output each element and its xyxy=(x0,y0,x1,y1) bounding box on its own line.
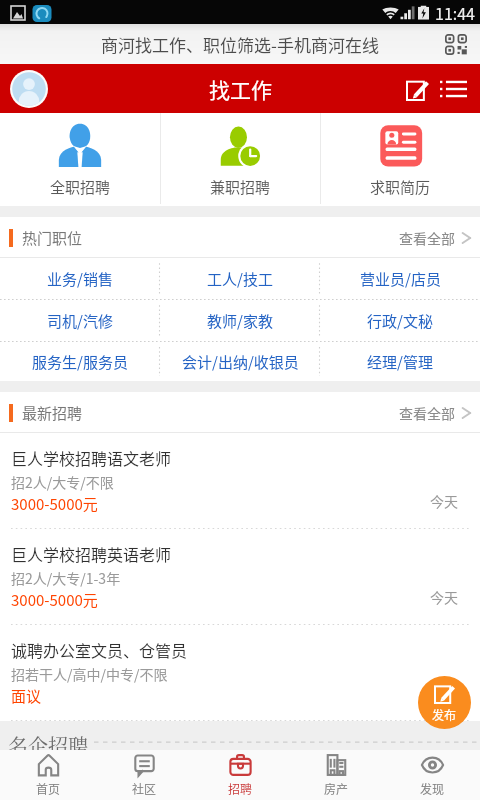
button[interactable]: 营业员/店员 xyxy=(320,258,480,299)
staticText: 名企招聘 xyxy=(8,731,88,760)
staticText: 首页 xyxy=(36,780,61,797)
button[interactable]: 巨人学校招聘英语老师 xyxy=(0,529,480,625)
button[interactable]: 巨人学校招聘语文老师 xyxy=(0,433,480,529)
button[interactable]: 查看全部 xyxy=(389,217,480,258)
button[interactable]: 社区 xyxy=(96,750,192,800)
staticText: 经理/管理 xyxy=(367,351,433,373)
button[interactable]: 司机/汽修 xyxy=(0,300,160,341)
staticText: 3000-5000元 xyxy=(11,589,98,611)
button[interactable]: 首页 xyxy=(0,750,96,800)
staticText: 招2人/大专/不限 xyxy=(11,472,114,492)
button[interactable]: 扫一扫 QR code xyxy=(443,31,469,57)
staticText: 11:44 xyxy=(435,1,475,24)
staticText: 找工作 xyxy=(209,74,272,104)
button[interactable]: 诚聘办公室文员、仓管员 xyxy=(0,625,480,721)
staticText: 房产 xyxy=(324,780,349,797)
staticText: 查看全部 xyxy=(399,403,455,423)
staticText: 诚聘办公室文员、仓管员 xyxy=(11,638,188,661)
staticText: 今天 xyxy=(430,491,458,511)
button[interactable]: 行政/文秘 xyxy=(320,300,480,341)
button[interactable]: 会计/出纳/收银员 xyxy=(160,342,320,381)
staticText: 服务生/服务员 xyxy=(32,351,128,373)
button[interactable]: 经理/管理 xyxy=(320,342,480,381)
button[interactable]: 求职简历 xyxy=(321,113,480,206)
staticText: 最新招聘 xyxy=(22,402,83,424)
button[interactable]: 菜单 Menu xyxy=(435,67,472,111)
button[interactable]: 查看全部 xyxy=(389,392,480,433)
staticText: 求职简历 xyxy=(370,176,431,198)
staticText: 招聘 xyxy=(228,780,253,797)
staticText: 3000-5000元 xyxy=(11,493,98,515)
staticText: 热门职位 xyxy=(22,227,83,249)
staticText: 查看全部 xyxy=(399,228,455,248)
button[interactable]: 发布 Publish xyxy=(418,676,471,729)
button[interactable]: 教师/家教 xyxy=(160,300,320,341)
staticText: 巨人学校招聘英语老师 xyxy=(11,542,172,565)
button[interactable]: 发现 xyxy=(384,750,480,800)
button[interactable]: 业务/销售 xyxy=(0,258,160,299)
staticText: 司机/汽修 xyxy=(47,310,113,332)
button[interactable]: 招聘 xyxy=(192,750,288,800)
staticText: 巨人学校招聘语文老师 xyxy=(11,446,172,469)
staticText: 招2人/大专/1-3年 xyxy=(11,568,121,588)
button[interactable]: 个人中心 Profile xyxy=(10,70,48,108)
staticText: 发布 xyxy=(432,706,457,723)
staticText: 营业员/店员 xyxy=(360,268,441,290)
staticText: 商河找工作、职位筛选-手机商河在线 xyxy=(101,32,379,57)
staticText: 社区 xyxy=(132,780,157,797)
button[interactable]: 兼职招聘 xyxy=(161,113,320,206)
staticText: 工人/技工 xyxy=(207,268,273,290)
staticText: 招若干人/高中/中专/不限 xyxy=(11,664,168,684)
staticText: 面议 xyxy=(11,685,42,707)
staticText: 会计/出纳/收银员 xyxy=(182,351,299,373)
staticText: 教师/家教 xyxy=(207,310,273,332)
button[interactable]: 发布 Compose xyxy=(399,67,435,111)
staticText: 今天 xyxy=(430,587,458,607)
button[interactable]: 服务生/服务员 xyxy=(0,342,160,381)
staticText: 兼职招聘 xyxy=(210,176,271,198)
button[interactable]: 房产 xyxy=(288,750,384,800)
button[interactable]: 工人/技工 xyxy=(160,258,320,299)
staticText: 发现 xyxy=(420,780,445,797)
staticText: 全职招聘 xyxy=(50,176,111,198)
staticText: 业务/销售 xyxy=(47,268,113,290)
staticText: 行政/文秘 xyxy=(367,310,433,332)
button[interactable]: 全职招聘 xyxy=(0,113,160,206)
